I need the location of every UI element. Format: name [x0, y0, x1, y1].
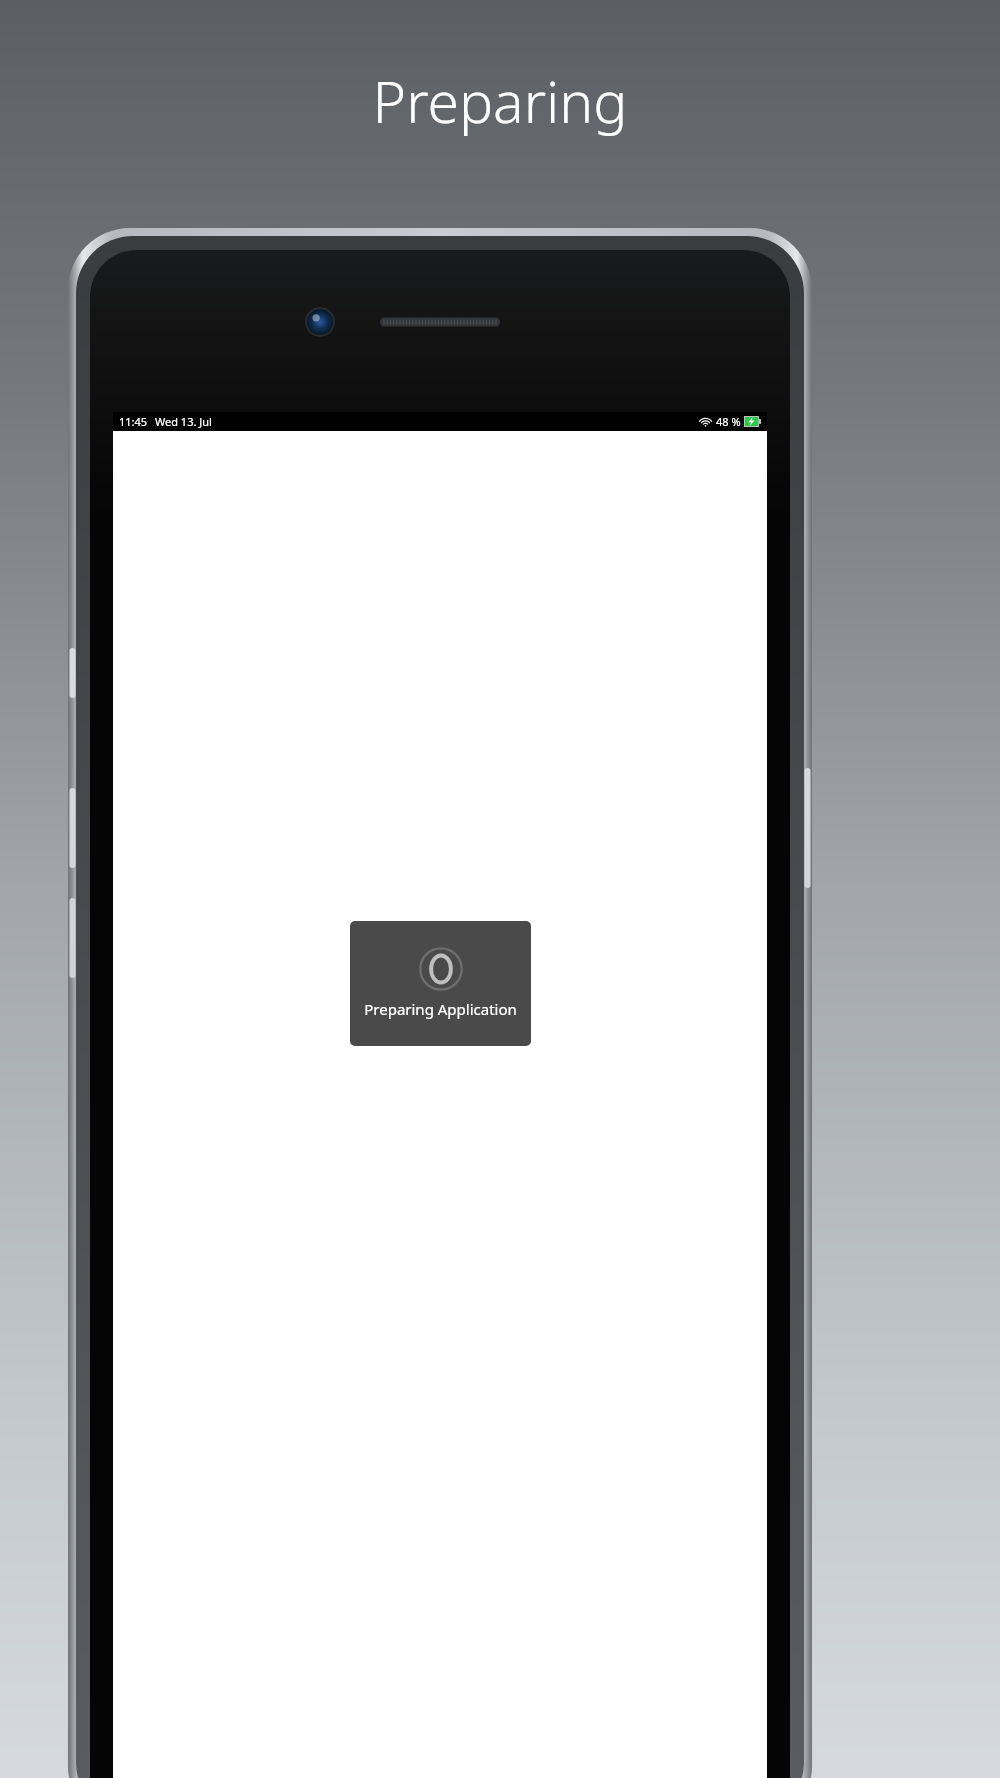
other: Wi-Fi: [699, 416, 712, 427]
staticText: 11:45: [119, 414, 148, 429]
staticText: Wed 13. Jul: [155, 414, 212, 429]
other: Battery charging: [744, 416, 761, 427]
staticText: Preparing: [0, 62, 1000, 140]
other: Loading: [418, 946, 464, 992]
staticText: 48 %: [716, 414, 741, 429]
button[interactable]: Loading: [350, 921, 531, 1046]
staticText: Preparing Application: [364, 999, 517, 1019]
